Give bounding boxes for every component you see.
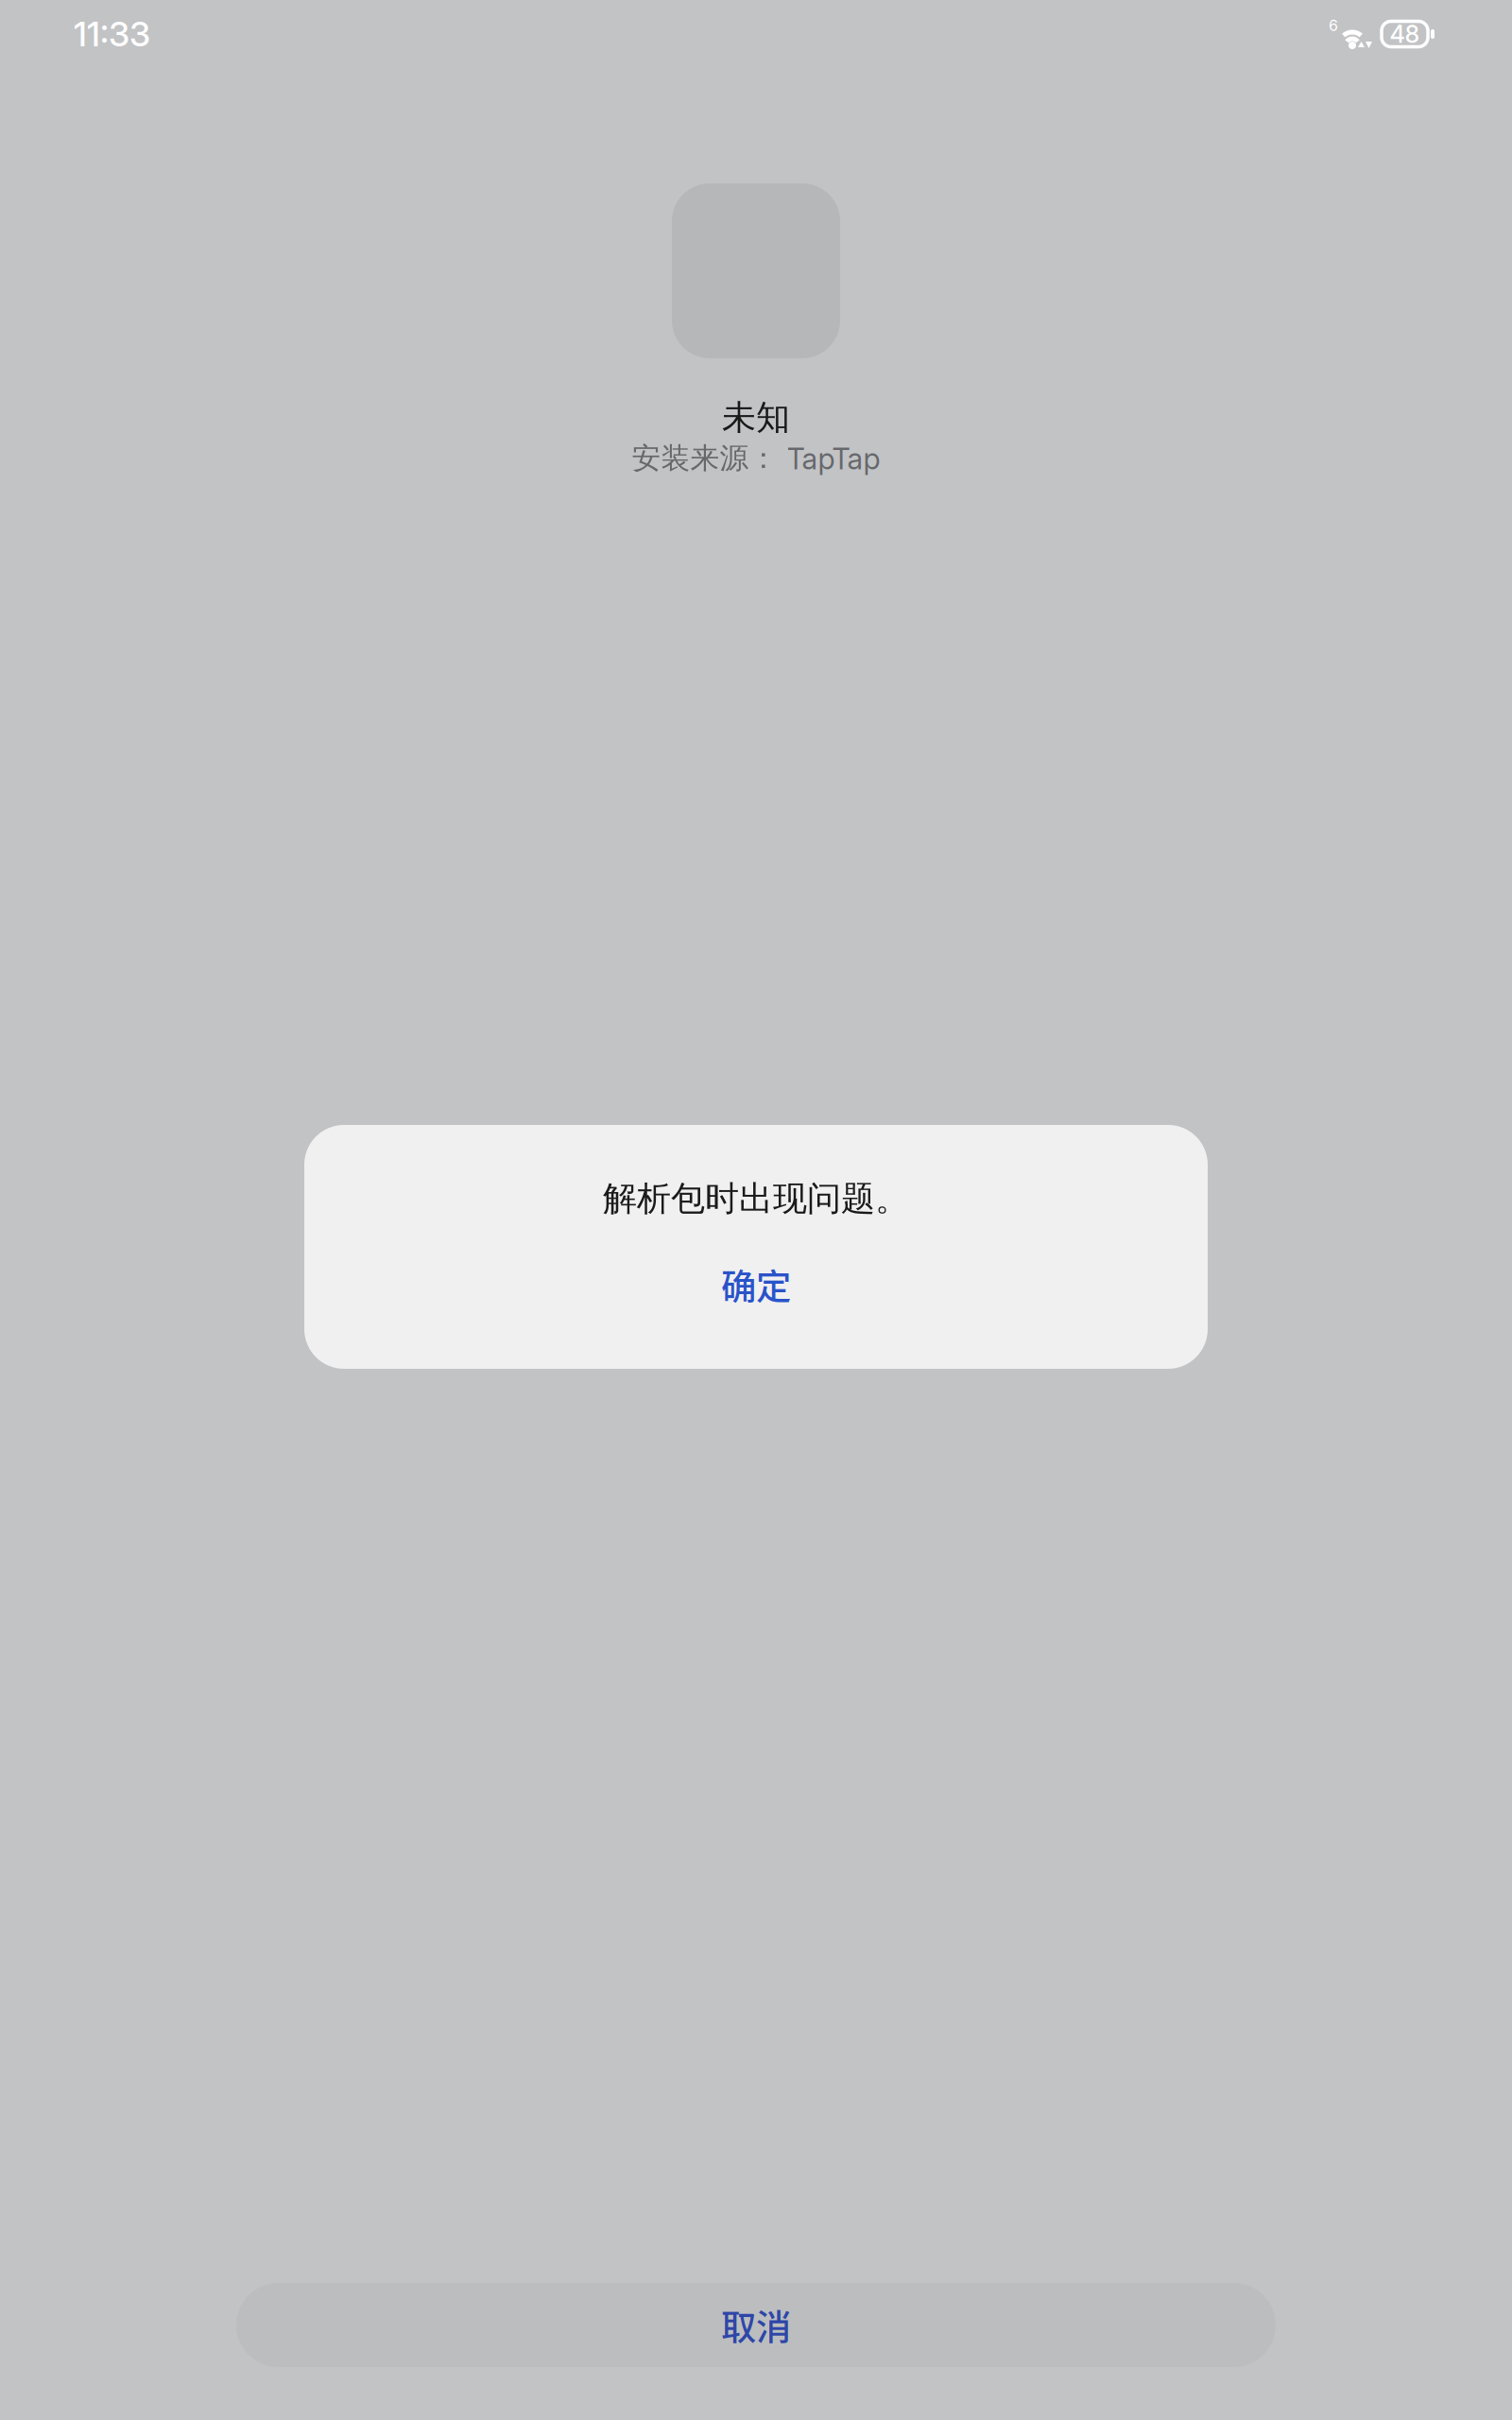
staticText: 取消 <box>721 2299 791 2351</box>
staticText: 确定 <box>721 1259 791 1310</box>
button[interactable]: 取消 <box>236 2283 1276 2367</box>
staticText: 6 <box>1329 16 1338 35</box>
staticText: 11:33 <box>74 13 150 55</box>
staticText: 解析包时出现问题。 <box>603 1177 909 1220</box>
staticText: 48 <box>1390 20 1420 49</box>
staticText: 未知 <box>722 396 790 439</box>
button[interactable]: 确定 <box>304 1258 1208 1311</box>
staticText: 安装来源： TapTap <box>632 440 880 476</box>
